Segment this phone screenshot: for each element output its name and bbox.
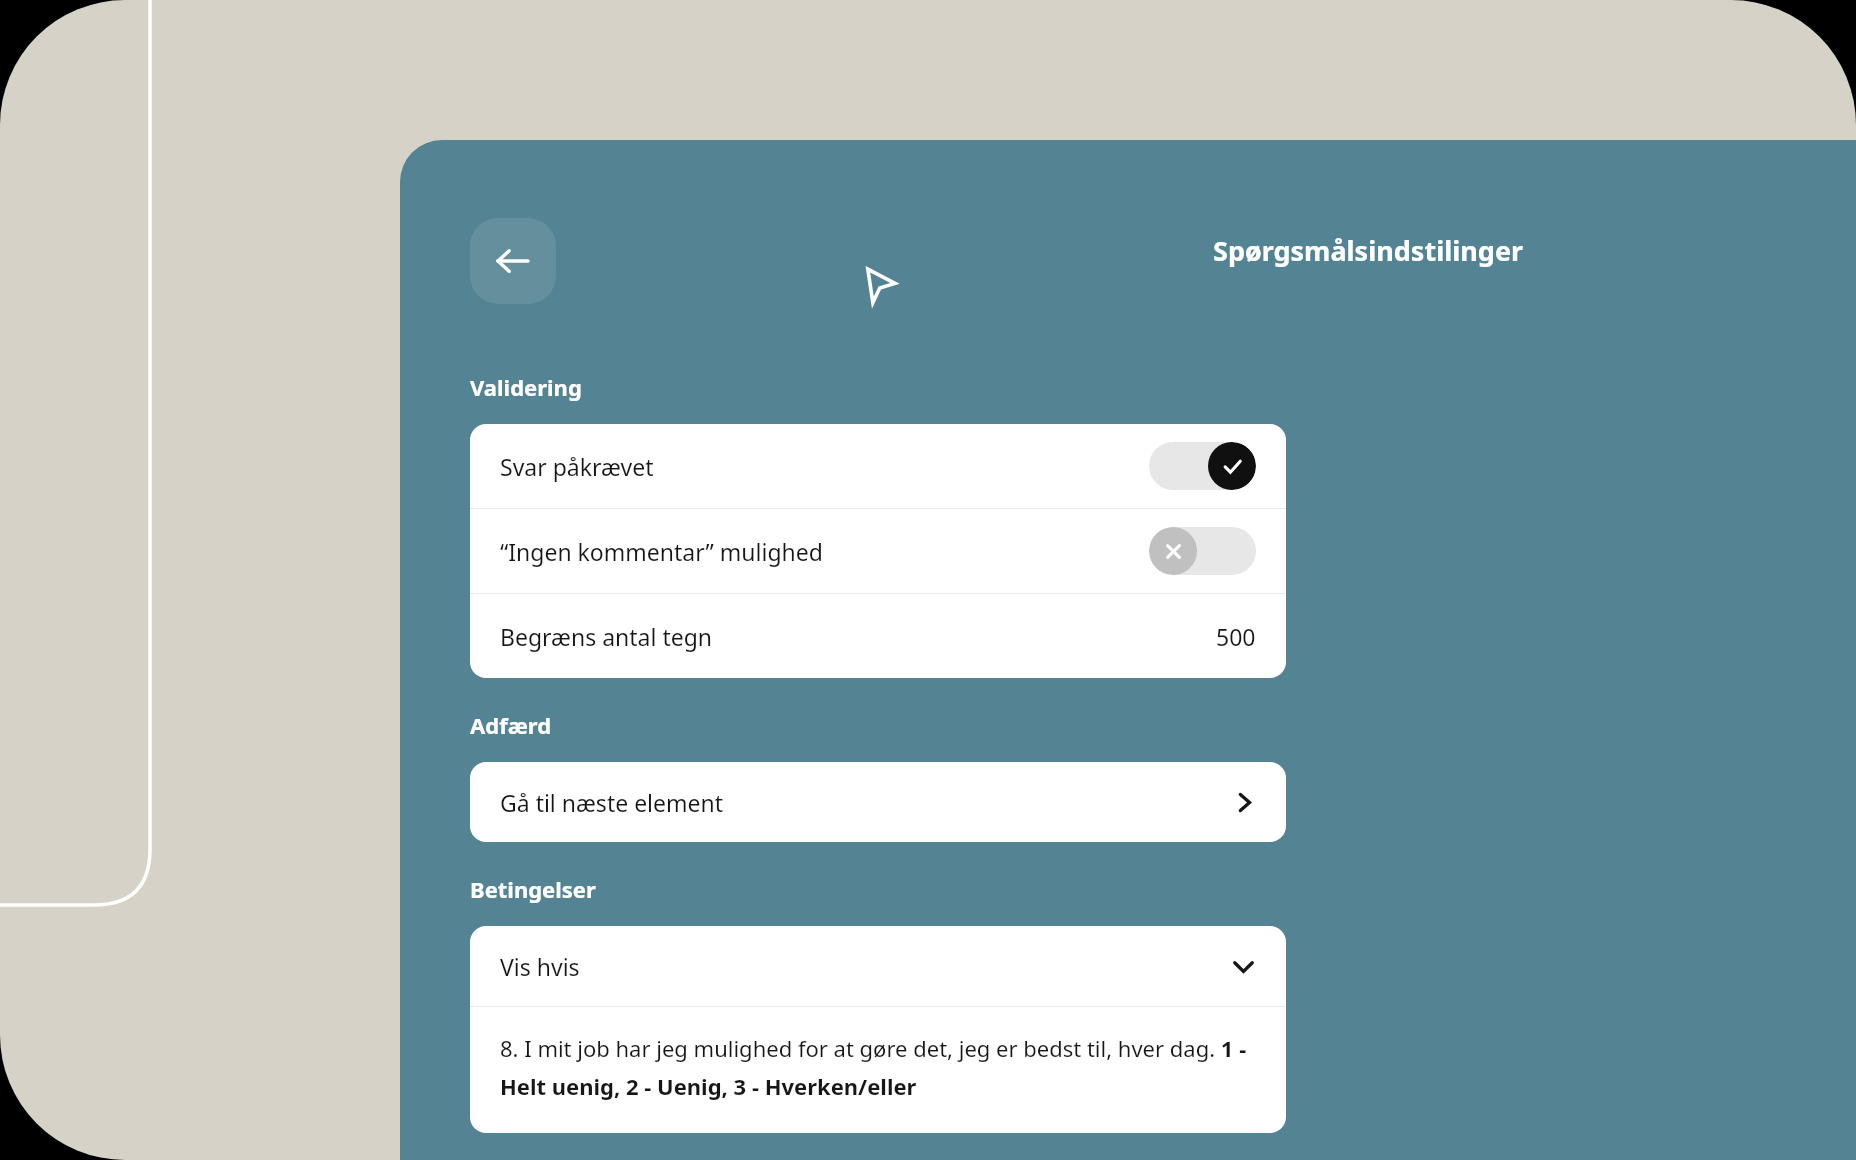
staticText: 8. I mit job har jeg mulighed for at gør… — [500, 1033, 1258, 1101]
button[interactable]: Back — [470, 218, 556, 304]
button[interactable]: Vis hvis — [470, 926, 1286, 1006]
staticText: Betingelser — [470, 874, 596, 904]
staticText: Validering — [470, 372, 582, 402]
staticText: 500 — [1216, 621, 1256, 652]
staticText: Gå til næste element — [500, 787, 724, 818]
staticText: Vis hvis — [500, 951, 580, 982]
staticText: Begræns antal tegn — [500, 621, 713, 652]
staticText: Svar påkrævet — [500, 451, 654, 482]
button[interactable]: “Ingen kommentar” mulighed — [470, 509, 1286, 593]
button[interactable]: Svar påkrævet — [470, 424, 1286, 508]
staticText: Spørgsmålsindstilinger — [1213, 232, 1524, 269]
button[interactable]: Begræns antal tegn — [470, 594, 1286, 678]
staticText: “Ingen kommentar” mulighed — [500, 536, 823, 567]
button[interactable]: Gå til næste element — [470, 762, 1286, 842]
staticText: Adfærd — [470, 710, 552, 740]
